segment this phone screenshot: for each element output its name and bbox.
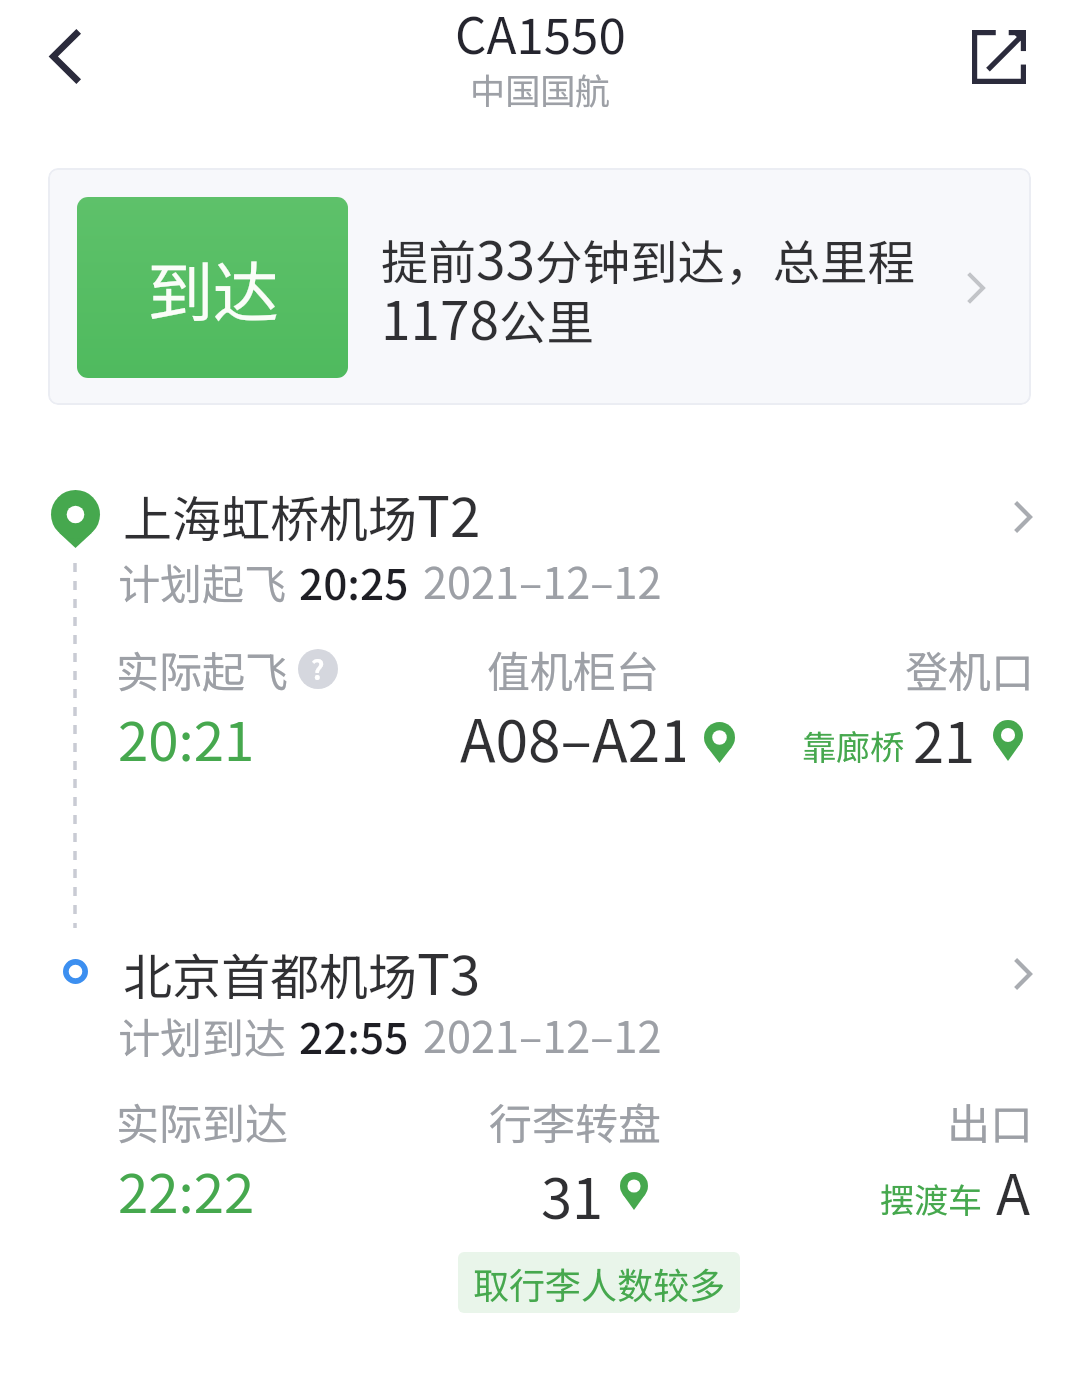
staticText: 行李转盘 — [489, 1090, 661, 1152]
staticText: 提前33分钟到达，总里程 — [381, 218, 916, 295]
staticText: 31 — [541, 1154, 604, 1235]
staticText: 1178公里 — [381, 278, 595, 355]
staticText: 靠廊桥 — [802, 721, 904, 770]
button[interactable]: 北京首都机场T3 — [48, 936, 1032, 996]
button[interactable]: 取行李人数较多 — [458, 1252, 740, 1313]
button[interactable]: 到达 — [48, 168, 1031, 405]
staticText: 登机口 — [905, 638, 1034, 700]
staticText: 出口 — [947, 1090, 1033, 1152]
staticText: 计划到达 — [118, 1005, 287, 1066]
button[interactable]: 北京首都机场T3 详情 — [1000, 952, 1044, 996]
staticText: ? — [311, 650, 325, 688]
staticText: 实际到达 — [116, 1090, 288, 1152]
staticText: 2021–12–12 — [423, 1003, 662, 1066]
button[interactable]: Share — [959, 17, 1039, 97]
staticText: 上海虹桥机场T2 — [123, 473, 481, 552]
staticText: 摆渡车 — [880, 1174, 982, 1223]
staticText: A — [996, 1150, 1031, 1231]
staticText: 计划起飞 — [118, 551, 287, 612]
staticText: 22:22 — [118, 1150, 255, 1229]
staticText: 到达 — [147, 240, 279, 336]
button[interactable]: Back — [26, 16, 106, 96]
staticText: A08–A21 — [460, 694, 685, 779]
staticText: 20:21 — [118, 698, 255, 777]
staticText: 实际起飞 — [116, 638, 288, 700]
staticText: 取行李人数较多 — [473, 1257, 726, 1309]
button[interactable]: 上海虹桥机场T2 详情 — [1000, 495, 1044, 539]
staticText: 北京首都机场T3 — [123, 931, 481, 1010]
button[interactable]: 上海虹桥机场T2 — [48, 478, 1032, 538]
staticText: CA1550 — [455, 0, 626, 68]
staticText: 20:25 — [299, 551, 409, 612]
staticText: 2021–12–12 — [423, 549, 662, 612]
staticText: 21 — [913, 698, 976, 779]
staticText: 中国国航 — [470, 63, 611, 114]
staticText: 值机柜台 — [487, 638, 659, 700]
staticText: 22:55 — [299, 1005, 409, 1066]
